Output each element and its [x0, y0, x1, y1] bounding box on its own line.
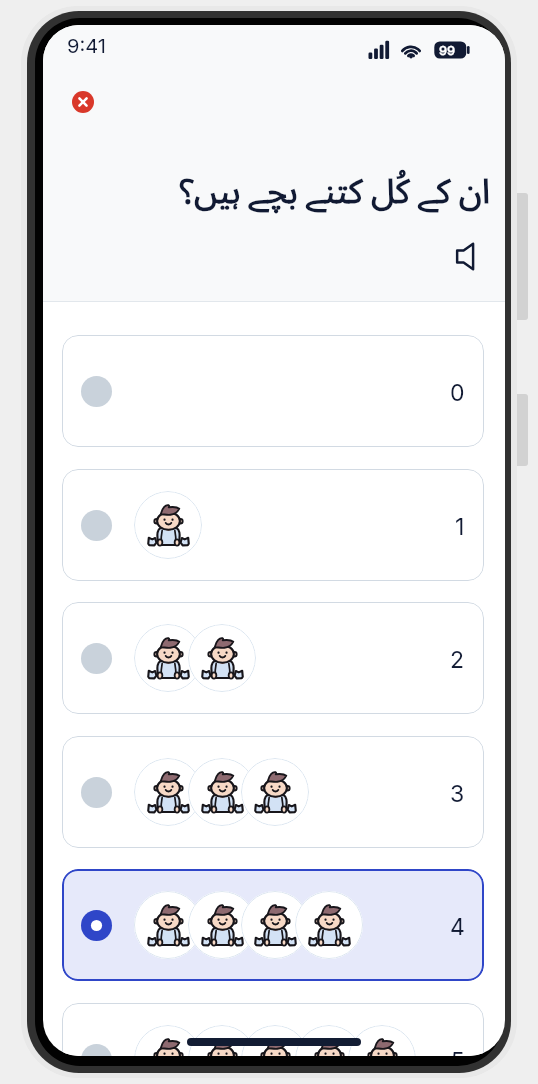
staticText: ان کے کُل کتنے بچے ہیں؟	[43, 157, 490, 228]
staticText: 0	[450, 379, 465, 407]
button[interactable]: 4	[62, 869, 484, 981]
button[interactable]: 2	[62, 602, 484, 714]
staticText: 1	[455, 513, 465, 541]
staticText: 9:41	[67, 34, 106, 58]
staticText: 3	[450, 780, 465, 808]
button[interactable]: Play audio	[443, 234, 487, 278]
staticText: 4	[450, 913, 465, 941]
staticText: 2	[450, 646, 465, 674]
button[interactable]: 1	[62, 469, 484, 581]
button[interactable]: Close	[72, 91, 94, 113]
button[interactable]: 0	[62, 335, 484, 447]
staticText: 5	[451, 1047, 465, 1056]
button[interactable]: 3	[62, 736, 484, 848]
staticText: 99	[439, 42, 456, 58]
button[interactable]: 5	[62, 1003, 484, 1056]
